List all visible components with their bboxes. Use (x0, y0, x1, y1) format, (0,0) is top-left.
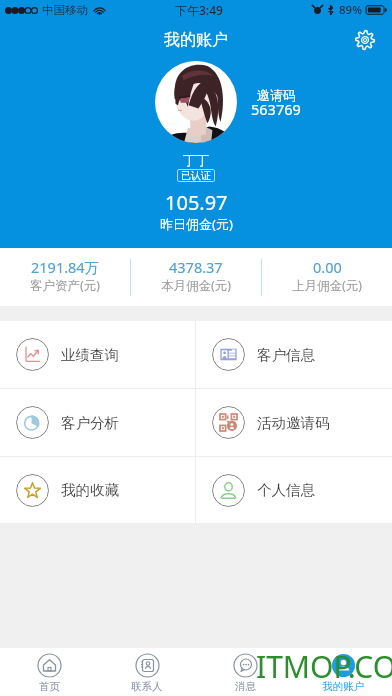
staticText: 联系人 (131, 680, 163, 693)
button[interactable]: 首页 (0, 648, 98, 696)
button[interactable]: 我的收藏 (0, 457, 195, 523)
staticText: 首页 (39, 680, 60, 693)
staticText: 昨日佣金(元) (160, 215, 233, 233)
staticText: 本月佣金(元) (161, 277, 232, 294)
button[interactable]: 个人信息 (196, 457, 392, 523)
button[interactable]: 客户信息 (196, 321, 392, 388)
button[interactable]: 业绩查询 (0, 321, 195, 388)
staticText: 客户分析 (61, 414, 119, 432)
staticText: 89% (339, 2, 362, 18)
staticText: 4378.37 (169, 257, 223, 277)
button[interactable]: 联系人 (98, 648, 196, 696)
staticText: 已认证 (181, 169, 211, 182)
staticText: 我的账户 (322, 680, 364, 693)
staticText: 客户资产(元) (30, 277, 101, 294)
staticText: 0.00 (313, 257, 342, 277)
staticText: 中国移动 (42, 3, 88, 17)
staticText: 2191.84万 (31, 257, 100, 277)
staticText: 563769 (251, 99, 301, 119)
staticText: 邀请码 (257, 87, 296, 103)
button[interactable]: 2191.84万 (0, 248, 130, 306)
button[interactable]: Settings (351, 26, 379, 54)
staticText: 活动邀请码 (257, 414, 330, 432)
staticText: 业绩查询 (61, 346, 119, 364)
button[interactable]: 客户分析 (0, 389, 195, 456)
staticText: 下午3:49 (175, 2, 223, 18)
staticText: ITMOP.COM (256, 646, 392, 687)
button[interactable]: 我的账户 (294, 648, 392, 696)
button[interactable]: 4378.37 (131, 248, 261, 306)
staticText: 105.97 (165, 189, 228, 216)
staticText: 客户信息 (257, 346, 315, 364)
button[interactable]: 活动邀请码 (196, 389, 392, 456)
staticText: 丁丁 (183, 152, 209, 168)
button[interactable] (155, 61, 237, 143)
staticText: 个人信息 (257, 481, 315, 499)
staticText: 我的收藏 (61, 481, 119, 499)
staticText: 我的账户 (164, 30, 228, 50)
button[interactable]: 消息 (196, 648, 294, 696)
button[interactable]: 0.00 (262, 248, 392, 306)
staticText: 消息 (235, 680, 256, 693)
staticText: 上月佣金(元) (292, 277, 363, 294)
